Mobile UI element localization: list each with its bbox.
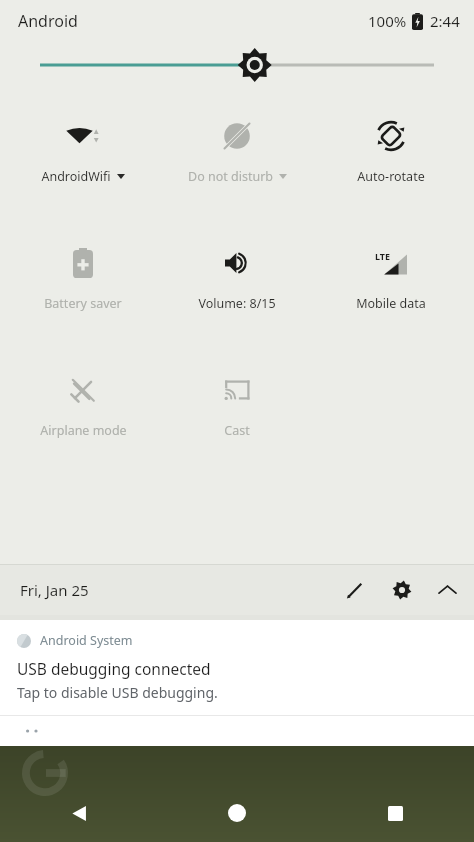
button[interactable]: Android System: [0, 620, 474, 715]
staticText: Volume: 8/15: [198, 295, 276, 312]
button[interactable]: Do not disturb: [160, 110, 314, 189]
staticText: USB debugging connected: [17, 658, 211, 679]
staticText: Mobile data: [356, 295, 426, 312]
staticText: Tap to disable USB debugging.: [17, 683, 218, 702]
button[interactable]: Settings: [378, 566, 426, 614]
staticText: Do not disturb: [188, 168, 273, 185]
button[interactable]: Battery saver: [6, 237, 160, 316]
staticText: Android System: [40, 632, 133, 649]
staticText: Auto-rotate: [357, 168, 425, 185]
staticText: 100%: [368, 11, 407, 31]
staticText: AndroidWifi: [41, 168, 111, 185]
button[interactable]: Cast: [160, 364, 314, 443]
button[interactable]: Volume: 8/15: [160, 237, 314, 316]
button[interactable]: Collapse: [426, 566, 468, 614]
staticText: Cast: [224, 422, 250, 439]
staticText: 2:44: [430, 11, 460, 31]
staticText: Fri, Jan 25: [20, 580, 89, 600]
staticText: Android: [18, 10, 78, 32]
staticText: Battery saver: [44, 295, 122, 312]
button[interactable]: Brightness: [0, 42, 474, 88]
button[interactable]: Home: [158, 784, 316, 842]
button[interactable]: Recent apps: [316, 784, 474, 842]
button[interactable]: Auto-rotate: [314, 110, 468, 189]
staticText: LTE: [375, 250, 391, 262]
button[interactable]: Back: [0, 784, 158, 842]
staticText: Airplane mode: [40, 422, 127, 439]
button[interactable]: AndroidWifi: [6, 110, 160, 189]
button[interactable]: LTE: [314, 237, 468, 316]
button[interactable]: Airplane mode: [6, 364, 160, 443]
button[interactable]: Edit: [330, 566, 378, 614]
